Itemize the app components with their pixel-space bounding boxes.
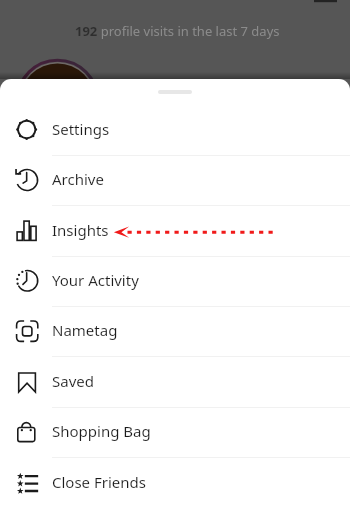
button[interactable]: Shopping Bag — [0, 406, 350, 456]
button[interactable]: Your Activity — [0, 255, 350, 305]
staticText: Shopping Bag — [52, 421, 151, 441]
button[interactable]: Saved — [0, 356, 350, 406]
button[interactable]: Archive — [0, 154, 350, 204]
staticText: Settings — [52, 119, 110, 139]
staticText: Saved — [52, 371, 94, 391]
staticText: Your Activity — [52, 270, 139, 290]
staticText: 192 profile visits in the last 7 days — [75, 22, 280, 40]
button[interactable]: Nametag — [0, 305, 350, 355]
staticText: Close Friends — [52, 472, 146, 492]
staticText: Insights — [52, 220, 109, 240]
staticText: Archive — [52, 169, 104, 189]
button[interactable]: Settings — [0, 104, 350, 154]
staticText: Nametag — [52, 320, 118, 340]
button[interactable]: Insights — [0, 205, 350, 255]
button[interactable]: Close Friends — [0, 457, 350, 507]
